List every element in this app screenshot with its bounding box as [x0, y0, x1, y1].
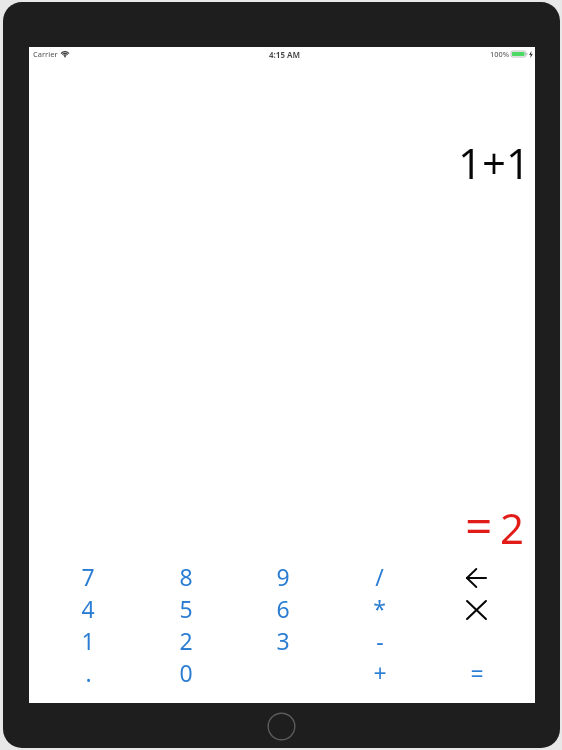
- other: Clear: [466, 600, 487, 620]
- button[interactable]: 8: [137, 560, 234, 592]
- button[interactable]: 3: [234, 624, 331, 656]
- button[interactable]: 9: [234, 560, 331, 592]
- button[interactable]: 4: [39, 592, 137, 624]
- button[interactable]: +: [331, 656, 428, 688]
- staticText: +: [373, 657, 387, 688]
- button[interactable]: Clear: [428, 592, 525, 624]
- button[interactable]: .: [39, 656, 137, 688]
- staticText: 4:15 AM: [269, 49, 301, 60]
- button[interactable]: 0: [137, 656, 234, 688]
- button[interactable]: Home: [267, 712, 296, 741]
- staticText: 2: [500, 499, 525, 556]
- staticText: 7: [81, 561, 95, 592]
- staticText: 2: [179, 625, 193, 656]
- button[interactable]: 6: [234, 592, 331, 624]
- button[interactable]: 1: [39, 624, 137, 656]
- staticText: Carrier: [33, 49, 58, 59]
- button[interactable]: -: [331, 624, 428, 656]
- staticText: 8: [179, 561, 193, 592]
- staticText: 3: [276, 625, 290, 656]
- button[interactable]: *: [331, 592, 428, 624]
- other: Backspace: [466, 568, 487, 588]
- staticText: =: [470, 657, 484, 688]
- staticText: 0: [179, 657, 193, 688]
- staticText: -: [376, 625, 384, 656]
- button[interactable]: 7: [39, 560, 137, 592]
- staticText: 5: [179, 593, 193, 624]
- button[interactable]: =: [428, 656, 525, 688]
- staticText: 1+1: [458, 134, 531, 191]
- staticText: 1: [81, 625, 95, 656]
- staticText: /: [375, 561, 384, 592]
- staticText: *: [373, 593, 386, 624]
- button[interactable]: 5: [137, 592, 234, 624]
- button[interactable]: 2: [137, 624, 234, 656]
- staticText: =: [465, 492, 493, 557]
- button[interactable]: /: [331, 560, 428, 592]
- staticText: 4: [81, 593, 95, 624]
- staticText: 9: [276, 561, 290, 592]
- staticText: .: [85, 657, 92, 688]
- staticText: 6: [276, 593, 290, 624]
- staticText: 100%: [490, 49, 509, 59]
- button[interactable]: Backspace: [428, 560, 525, 592]
